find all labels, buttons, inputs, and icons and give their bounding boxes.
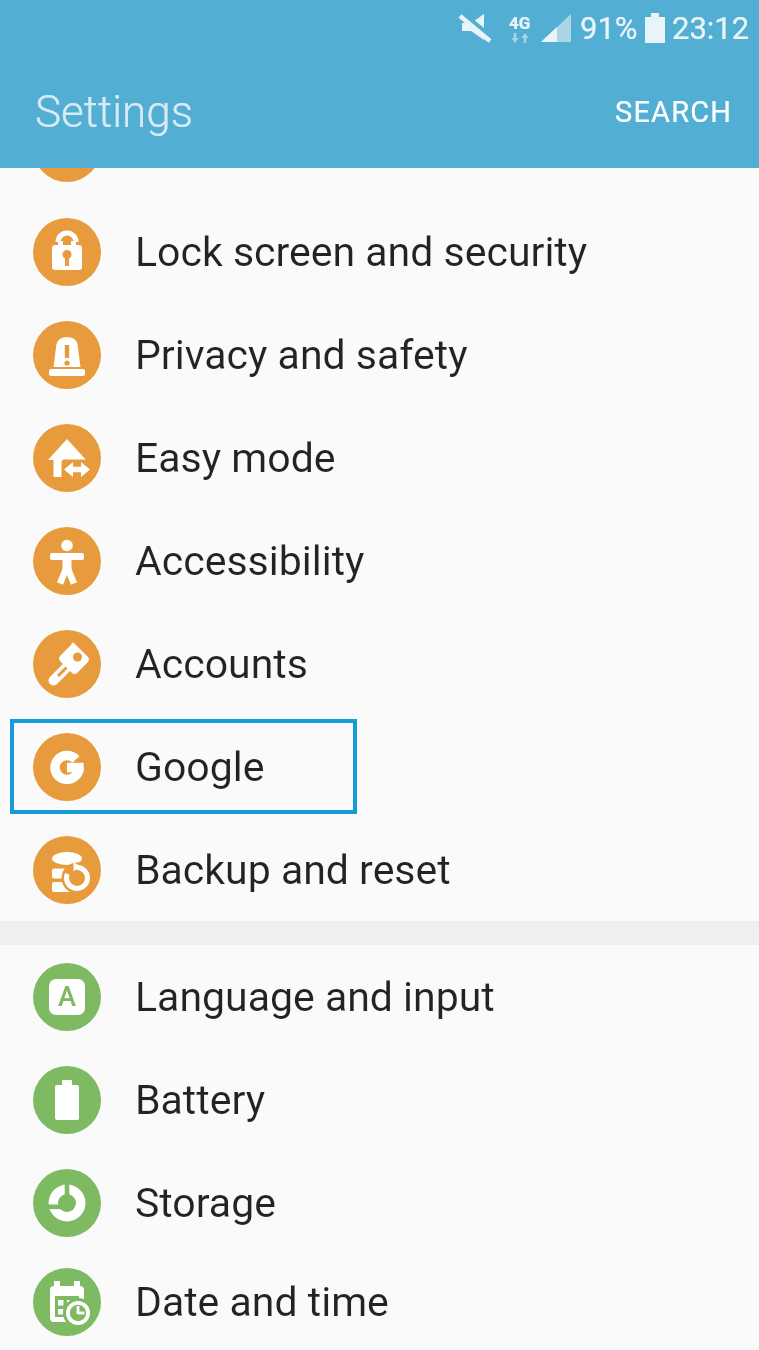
- staticText: 23:12: [672, 10, 750, 46]
- button[interactable]: Google: [0, 715, 759, 818]
- staticText: Date and time: [135, 1278, 389, 1326]
- button[interactable]: Lock screen and security: [0, 200, 759, 303]
- staticText: Privacy and safety: [135, 331, 468, 379]
- staticText: 4G: [509, 13, 531, 33]
- button[interactable]: SEARCH: [615, 95, 733, 129]
- button[interactable]: Battery: [0, 1048, 759, 1151]
- staticText: Google: [135, 743, 265, 791]
- staticText: A: [58, 981, 76, 1013]
- button[interactable]: Accounts: [0, 612, 759, 715]
- button[interactable]: Date and time: [0, 1254, 759, 1350]
- staticText: 91%: [580, 10, 638, 46]
- button[interactable]: Privacy and safety: [0, 303, 759, 406]
- staticText: Storage: [135, 1179, 276, 1227]
- button[interactable]: Accessibility: [0, 509, 759, 612]
- button[interactable]: A: [0, 945, 759, 1048]
- staticText: Battery: [135, 1076, 266, 1124]
- staticText: SEARCH: [615, 95, 733, 129]
- button[interactable]: Backup and reset: [0, 818, 759, 921]
- staticText: Language and input: [135, 973, 495, 1021]
- staticText: Backup and reset: [135, 846, 451, 894]
- staticText: Accessibility: [135, 537, 365, 585]
- staticText: Settings: [35, 86, 193, 138]
- button[interactable]: Storage: [0, 1151, 759, 1254]
- staticText: Accounts: [135, 640, 308, 688]
- staticText: Easy mode: [135, 434, 336, 482]
- staticText: Lock screen and security: [135, 228, 588, 276]
- button[interactable]: Easy mode: [0, 406, 759, 509]
